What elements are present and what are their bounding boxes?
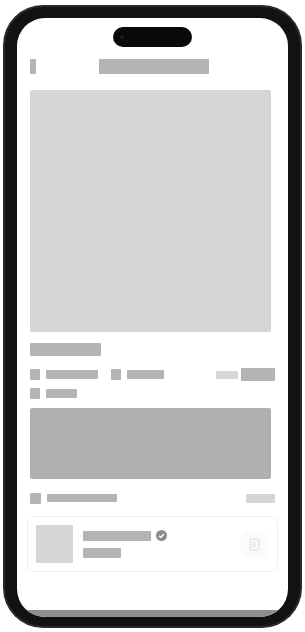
- button[interactable]: Back: [30, 59, 36, 74]
- button[interactable]: Details: [241, 531, 268, 558]
- button[interactable]: Details: [27, 516, 278, 572]
